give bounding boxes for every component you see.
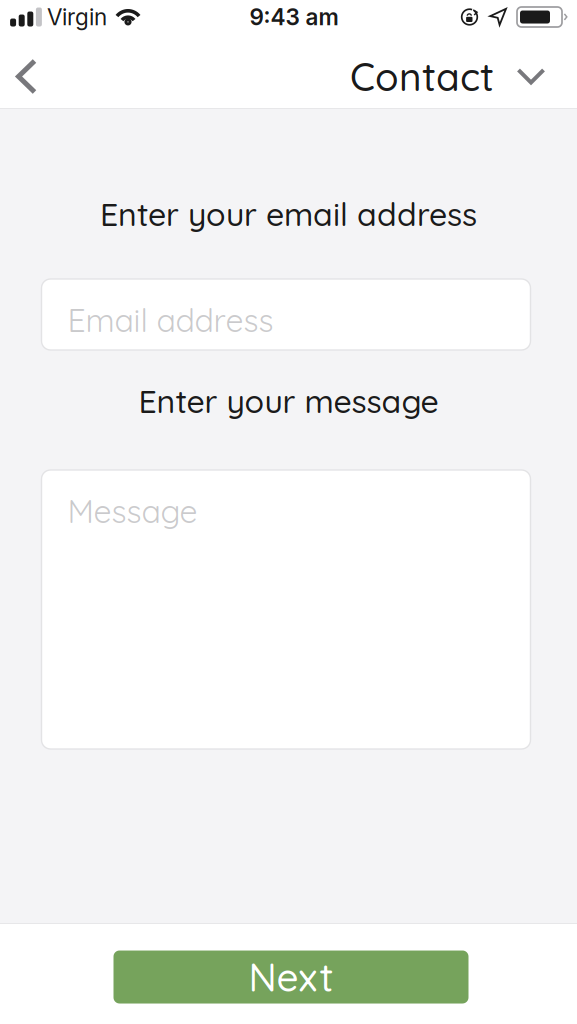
button[interactable]: Contact <box>350 45 577 108</box>
button[interactable]: Email address <box>44 279 533 350</box>
staticText: Next <box>248 953 333 1001</box>
staticText: Email address <box>67 300 273 340</box>
button[interactable]: Back <box>0 45 55 108</box>
staticText: Enter your message <box>138 381 438 421</box>
staticText: Contact <box>350 52 494 101</box>
button[interactable]: Next <box>111 947 466 1000</box>
staticText: Enter your email address <box>100 194 477 234</box>
staticText: Message <box>67 491 197 531</box>
staticText: 9:43 am <box>249 3 338 31</box>
button[interactable]: Message <box>44 470 533 749</box>
staticText: Virgin <box>47 3 107 31</box>
